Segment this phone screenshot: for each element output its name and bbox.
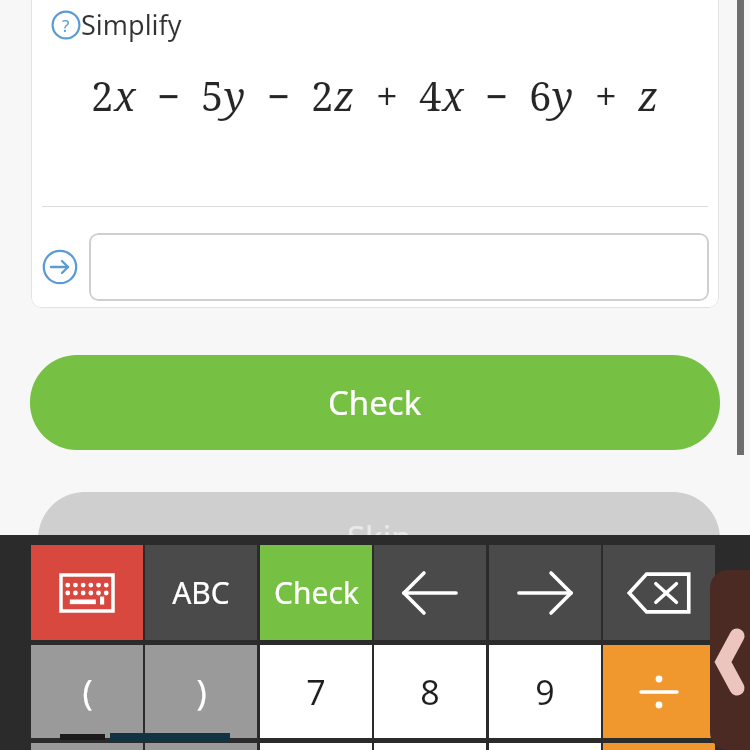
staticText: −	[464, 68, 529, 122]
staticText: x	[114, 68, 136, 122]
staticText: Skip	[347, 515, 412, 560]
button[interactable]: Check	[30, 355, 720, 450]
staticText: −	[246, 68, 311, 122]
staticText: 8	[420, 669, 440, 715]
staticText: 2	[311, 68, 334, 122]
staticText: y	[552, 68, 574, 122]
other: Help	[51, 10, 81, 40]
button[interactable]: Move left	[374, 545, 486, 640]
staticText: z	[638, 68, 659, 122]
staticText: 7	[306, 669, 326, 715]
staticText: 4	[419, 68, 442, 122]
button[interactable]: 9	[489, 645, 601, 738]
staticText: 6	[529, 68, 552, 122]
button[interactable]: ABC	[145, 545, 257, 640]
button[interactable]: Help	[51, 6, 182, 43]
staticText: ?	[62, 14, 70, 37]
button[interactable]: Divide	[603, 645, 715, 738]
button[interactable]: )	[145, 645, 257, 738]
staticText: y	[224, 68, 246, 122]
button[interactable]: Hide keyboard	[31, 545, 143, 640]
staticText: z	[334, 68, 355, 122]
staticText: (	[82, 669, 93, 715]
staticText: x	[442, 68, 464, 122]
button[interactable]	[89, 233, 709, 301]
staticText: Check	[274, 572, 359, 613]
button[interactable]: Expand panel	[710, 570, 750, 750]
staticText: 2	[91, 68, 114, 122]
staticText: Check	[328, 380, 422, 425]
staticText: )	[196, 669, 207, 715]
button[interactable]: 8	[374, 645, 486, 738]
staticText: 5	[201, 68, 224, 122]
staticText: Simplify	[81, 6, 182, 43]
staticText: +	[355, 68, 419, 122]
staticText: 9	[535, 669, 555, 715]
button[interactable]: Submit answer	[42, 249, 78, 285]
button[interactable]: 7	[260, 645, 372, 738]
button[interactable]	[603, 743, 715, 750]
button[interactable]: Check	[260, 545, 372, 640]
staticText: ABC	[172, 572, 230, 613]
button[interactable]: Skip	[38, 492, 720, 587]
staticText: −	[136, 68, 201, 122]
button[interactable]: (	[31, 645, 143, 738]
button[interactable]: Move right	[489, 545, 601, 640]
staticText: +	[574, 68, 638, 122]
button[interactable]: Backspace	[603, 545, 715, 640]
